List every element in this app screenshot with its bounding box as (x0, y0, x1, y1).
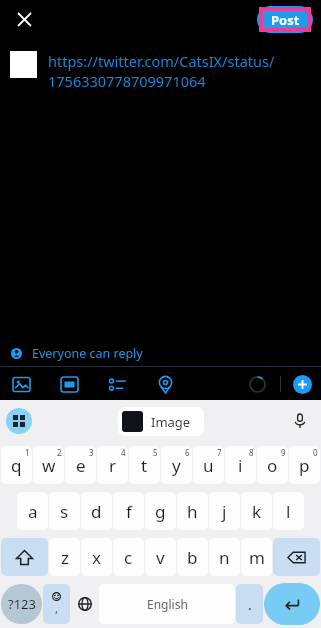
button[interactable]: s (49, 492, 80, 530)
button[interactable]: Voice input (287, 408, 313, 434)
staticText: 5 (153, 447, 158, 458)
button[interactable]: q (1, 446, 32, 484)
button[interactable] (257, 6, 313, 33)
staticText: , (55, 601, 58, 616)
staticText: 1 (25, 447, 30, 458)
staticText: l (286, 500, 291, 523)
staticText: . (248, 595, 252, 614)
button[interactable]: Backspace (273, 538, 320, 576)
button[interactable]: n (209, 538, 240, 576)
staticText: 7 (217, 447, 222, 458)
button[interactable]: Image (118, 407, 204, 436)
staticText: p (299, 454, 310, 477)
button[interactable]: d (81, 492, 112, 530)
button[interactable]: u (193, 446, 224, 484)
button[interactable]: h (177, 492, 208, 530)
staticText: i (238, 454, 243, 477)
button[interactable]: English (99, 584, 235, 624)
staticText: v (156, 546, 165, 569)
staticText: d (91, 500, 102, 523)
staticText: g (155, 500, 166, 523)
button[interactable]: t (129, 446, 160, 484)
button[interactable]: c (113, 538, 144, 576)
button[interactable]: Shift (1, 538, 48, 576)
button[interactable]: . (236, 584, 263, 624)
button[interactable]: i (225, 446, 256, 484)
button[interactable]: Add location (153, 372, 177, 396)
button[interactable]: Change language (71, 584, 98, 624)
button[interactable]: Close (8, 3, 40, 35)
button[interactable]: e (65, 446, 96, 484)
staticText: r (109, 454, 117, 477)
button[interactable]: w (33, 446, 64, 484)
button[interactable]: a (17, 492, 48, 530)
button[interactable]: Add GIF (57, 372, 81, 396)
button[interactable]: b (177, 538, 208, 576)
staticText: ?123 (8, 595, 36, 613)
staticText: English (147, 596, 188, 612)
button[interactable]: Add poll (105, 372, 129, 396)
button[interactable]: z (49, 538, 80, 576)
staticText: z (61, 546, 69, 569)
staticText: n (219, 546, 230, 569)
button[interactable]: m (241, 538, 272, 576)
button[interactable]: x (81, 538, 112, 576)
button[interactable]: Add post (293, 375, 312, 394)
staticText: Everyone can reply (32, 345, 143, 362)
staticText: a (28, 500, 38, 523)
staticText: b (187, 546, 198, 569)
staticText: f (126, 500, 132, 523)
button[interactable]: f (113, 492, 144, 530)
staticText: j (222, 500, 227, 523)
button[interactable]: Enter (264, 583, 320, 625)
button[interactable]: o (257, 446, 288, 484)
staticText: q (11, 454, 22, 477)
button[interactable]: Emoji and comma (43, 584, 70, 624)
staticText: 8 (249, 447, 254, 458)
button[interactable]: Add photo (9, 372, 33, 396)
button[interactable]: r (97, 446, 128, 484)
staticText: e (76, 454, 86, 477)
staticText: 2 (57, 447, 62, 458)
button[interactable]: ?123 (1, 584, 42, 624)
staticText: u (203, 454, 214, 477)
staticText: 3 (89, 447, 94, 458)
button[interactable]: k (241, 492, 272, 530)
staticText: s (60, 500, 69, 523)
staticText: Image (151, 413, 191, 431)
button[interactable]: Toolbar (6, 408, 32, 434)
staticText: m (249, 546, 265, 569)
button[interactable]: v (145, 538, 176, 576)
staticText: k (252, 500, 262, 523)
staticText: 4 (121, 447, 126, 458)
button[interactable]: Everyone can reply (0, 340, 321, 366)
staticText: 9 (281, 447, 286, 458)
staticText: w (42, 454, 56, 477)
button[interactable]: y (161, 446, 192, 484)
staticText: x (92, 546, 101, 569)
staticText: 0 (313, 447, 318, 458)
button[interactable]: p (289, 446, 320, 484)
staticText: https://twitter.com/CatsIX/status/175633… (48, 51, 309, 92)
staticText: o (267, 454, 278, 477)
button[interactable]: l (273, 492, 304, 530)
button[interactable]: g (145, 492, 176, 530)
staticText: h (187, 500, 198, 523)
staticText: Post (271, 11, 300, 28)
staticText: t (141, 454, 148, 477)
staticText: 6 (185, 447, 190, 458)
button[interactable]: j (209, 492, 240, 530)
staticText: y (172, 454, 181, 477)
staticText: c (124, 546, 133, 569)
